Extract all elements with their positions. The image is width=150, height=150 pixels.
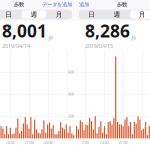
staticText: 8,286: [85, 19, 130, 42]
staticText: 追加: [79, 1, 89, 8]
staticText: 歩数: [14, 1, 24, 8]
button[interactable]: 追加: [79, 1, 89, 8]
staticText: 歩: [131, 34, 136, 41]
staticText: 600: [68, 69, 74, 74]
staticText: 月: [139, 10, 146, 19]
staticText: 日: [88, 10, 95, 19]
staticText: 23:00: [43, 140, 52, 145]
staticText: 8,001: [2, 19, 47, 42]
staticText: 合計: [85, 24, 95, 30]
staticText: 2019/04/15: [85, 42, 113, 49]
button[interactable]: 日: [0, 10, 21, 19]
staticText: 7:00: [81, 140, 88, 145]
staticText: 歩: [48, 34, 53, 41]
button[interactable]: 月: [130, 10, 150, 19]
staticText: 21:00: [118, 140, 127, 145]
staticText: 200: [68, 113, 74, 118]
staticText: 400: [68, 91, 74, 96]
button[interactable]: 週: [104, 10, 130, 19]
staticText: 歩数: [117, 1, 127, 8]
staticText: 2019/04/14: [2, 42, 30, 49]
staticText: 週: [113, 10, 120, 19]
staticText: 14:00: [5, 140, 14, 145]
staticText: 週: [30, 10, 37, 19]
button[interactable]: データを追加: [42, 1, 72, 8]
staticText: 月: [56, 10, 63, 19]
button[interactable]: 日: [79, 10, 104, 19]
button[interactable]: 週: [21, 10, 47, 19]
staticText: 日: [5, 10, 12, 19]
staticText: 14:00: [99, 140, 108, 145]
staticText: 合計: [2, 24, 12, 30]
button[interactable]: 月: [47, 10, 72, 19]
staticText: 21:00: [24, 140, 33, 145]
staticText: データを追加: [42, 1, 72, 8]
